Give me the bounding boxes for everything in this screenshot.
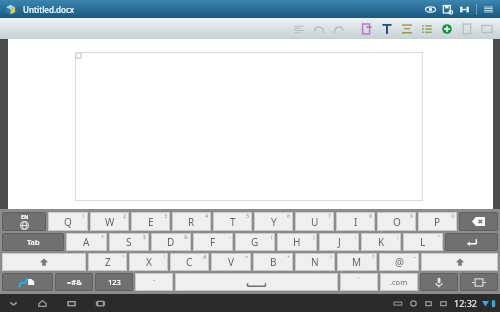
staticText: + bbox=[287, 253, 291, 260]
staticText: T bbox=[230, 215, 236, 229]
button[interactable]: Font bbox=[377, 19, 397, 39]
button[interactable]: Insert image bbox=[457, 19, 477, 39]
staticText: H bbox=[293, 235, 301, 249]
button[interactable]: Notification bbox=[421, 296, 436, 311]
button[interactable]: ; bbox=[361, 233, 401, 251]
staticText: ) bbox=[313, 233, 315, 240]
button[interactable]: - bbox=[193, 233, 233, 251]
button[interactable]: 4 bbox=[172, 212, 211, 231]
button[interactable]: Voice input bbox=[420, 273, 458, 291]
button[interactable]: * bbox=[66, 233, 107, 251]
staticText: D bbox=[167, 235, 175, 249]
staticText: : bbox=[355, 233, 357, 240]
button[interactable]: ? bbox=[337, 253, 377, 271]
button[interactable]: 8 bbox=[336, 212, 375, 231]
staticText: 3 bbox=[164, 212, 168, 219]
staticText: 1 bbox=[82, 212, 86, 219]
staticText: J bbox=[338, 235, 341, 249]
staticText: " bbox=[438, 233, 441, 240]
button[interactable]: Preview bbox=[422, 1, 439, 18]
button[interactable]: ° bbox=[88, 253, 127, 271]
staticText: Untitled.docx bbox=[23, 4, 75, 15]
staticText: 9 bbox=[410, 212, 414, 219]
staticText: 12:32 bbox=[454, 297, 478, 309]
button[interactable]: Save bbox=[439, 1, 456, 18]
staticText: - bbox=[229, 233, 231, 240]
button[interactable]: Tab bbox=[2, 233, 64, 251]
button[interactable]: Insert table bbox=[477, 19, 497, 39]
button[interactable]: : bbox=[319, 233, 359, 251]
button[interactable]: & bbox=[151, 233, 191, 251]
button[interactable]: Insert bbox=[437, 19, 457, 39]
button[interactable]: Paragraph align bbox=[397, 19, 417, 39]
staticText: G bbox=[251, 235, 259, 249]
staticText: O bbox=[393, 215, 401, 229]
button[interactable]: Undo bbox=[309, 19, 329, 39]
staticText: = bbox=[245, 253, 249, 260]
button[interactable]: EN bbox=[2, 212, 46, 231]
button[interactable]: # bbox=[170, 253, 209, 271]
button[interactable]: ' bbox=[340, 273, 378, 291]
button[interactable]: - bbox=[135, 273, 173, 291]
button[interactable]: Backspace bbox=[459, 212, 498, 231]
button[interactable]: 6 bbox=[254, 212, 293, 231]
button[interactable]: Swipe input bbox=[2, 273, 53, 291]
staticText: / bbox=[330, 253, 333, 260]
button[interactable]: =#& bbox=[55, 273, 93, 291]
button[interactable]: Notification two bbox=[436, 296, 451, 311]
button[interactable]: ) bbox=[277, 233, 317, 251]
button[interactable]: 0 bbox=[418, 212, 457, 231]
button[interactable]: Edit text bbox=[357, 19, 377, 39]
staticText: EN bbox=[21, 213, 29, 220]
button[interactable]: Space bbox=[175, 273, 338, 291]
button[interactable]: 2 bbox=[90, 212, 129, 231]
button[interactable]: .com bbox=[380, 273, 418, 291]
button[interactable]: 9 bbox=[377, 212, 416, 231]
button[interactable]: ! bbox=[129, 253, 168, 271]
staticText: V bbox=[228, 255, 234, 269]
button[interactable]: 1 bbox=[48, 212, 88, 231]
button[interactable]: Enter bbox=[445, 233, 498, 251]
button[interactable]: Sync status bbox=[406, 296, 421, 311]
button[interactable]: $ bbox=[109, 233, 149, 251]
button[interactable]: ( bbox=[235, 233, 275, 251]
staticText: ' bbox=[358, 275, 360, 284]
button[interactable]: 7 bbox=[295, 212, 334, 231]
button[interactable]: + bbox=[253, 253, 293, 271]
button[interactable]: Paragraph mark bbox=[289, 19, 309, 39]
staticText: I bbox=[354, 215, 358, 229]
button[interactable]: = bbox=[211, 253, 251, 271]
button[interactable]: Resize keyboard bbox=[460, 273, 498, 291]
button[interactable]: Keyboard active bbox=[391, 296, 406, 311]
button[interactable]: Menu bbox=[480, 1, 497, 18]
button[interactable]: Recent apps bbox=[64, 296, 79, 311]
staticText: @ bbox=[395, 255, 404, 269]
button[interactable]: / bbox=[295, 253, 335, 271]
staticText: ° bbox=[122, 253, 125, 260]
button[interactable]: 5 bbox=[213, 212, 252, 231]
staticText: K bbox=[378, 235, 385, 249]
staticText: B bbox=[270, 255, 277, 269]
button[interactable]: ~ bbox=[379, 253, 419, 271]
button[interactable]: Home bbox=[35, 296, 50, 311]
staticText: R bbox=[188, 215, 195, 229]
button[interactable]: 3 bbox=[131, 212, 170, 231]
button[interactable]: Hide keyboard bbox=[6, 296, 21, 311]
button[interactable]: Bullet list bbox=[417, 19, 437, 39]
staticText: 5 bbox=[246, 212, 250, 219]
button[interactable]: Fullscreen bbox=[93, 296, 108, 311]
staticText: 123 bbox=[108, 277, 121, 287]
button[interactable]: Redo bbox=[329, 19, 349, 39]
button[interactable]: Shift bbox=[421, 253, 498, 271]
staticText: E bbox=[148, 215, 154, 229]
staticText: U bbox=[311, 215, 319, 229]
staticText: 2 bbox=[123, 212, 127, 219]
button[interactable]: 123 bbox=[95, 273, 133, 291]
staticText: P bbox=[434, 215, 441, 229]
button[interactable]: Shift bbox=[2, 253, 86, 271]
button[interactable]: " bbox=[403, 233, 443, 251]
button[interactable]: Find bbox=[456, 1, 473, 18]
staticText: F bbox=[210, 235, 216, 249]
staticText: L bbox=[420, 235, 426, 249]
